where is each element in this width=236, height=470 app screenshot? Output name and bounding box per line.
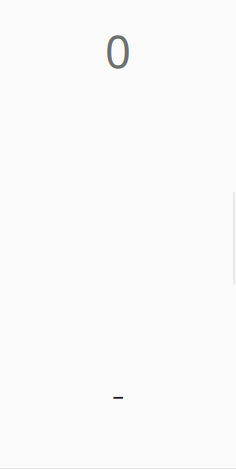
staticText: 0 <box>105 21 131 81</box>
staticText: – <box>112 380 123 410</box>
button[interactable]: Counter, 0 <box>81 0 155 81</box>
button[interactable]: Decrement <box>94 376 141 414</box>
